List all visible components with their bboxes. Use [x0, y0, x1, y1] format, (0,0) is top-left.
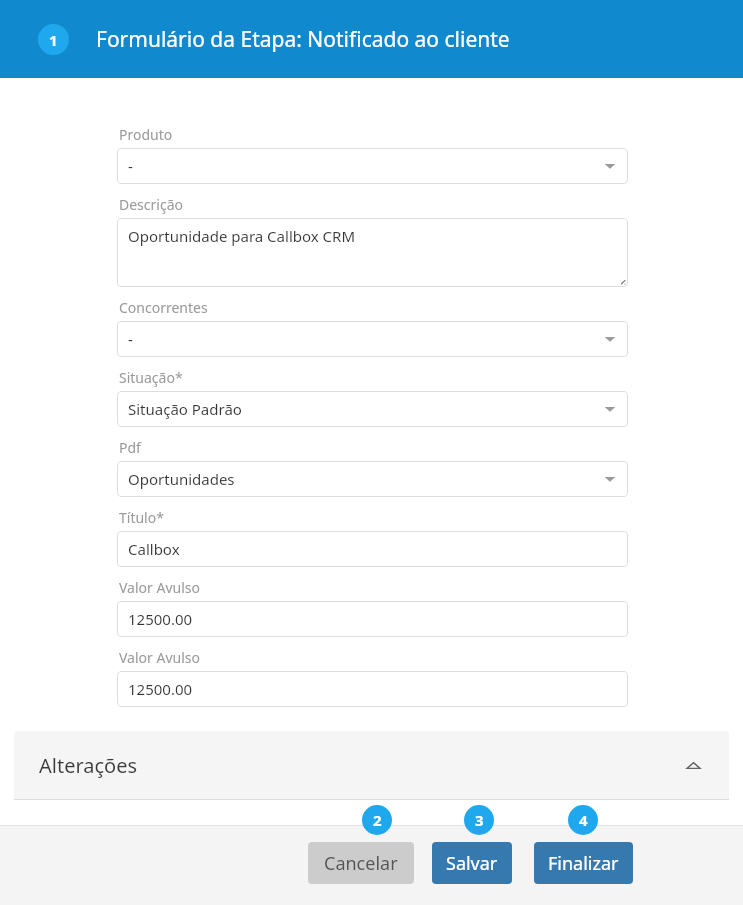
staticText: Valor Avulso	[119, 648, 200, 667]
staticText: Concorrentes	[119, 298, 208, 317]
staticText: Produto	[119, 125, 173, 144]
staticText: Oportunidade para Callbox CRM	[128, 226, 355, 246]
button[interactable]: Callbox	[117, 531, 628, 567]
staticText: Formulário da Etapa: Notificado ao clien…	[96, 25, 510, 54]
button[interactable]: -	[117, 148, 628, 184]
button[interactable]: 12500.00	[117, 671, 628, 707]
staticText: Valor Avulso	[119, 578, 200, 597]
staticText: Finalizar	[548, 851, 619, 876]
other: Collapse	[687, 759, 700, 772]
button[interactable]: Finalizar	[534, 842, 633, 884]
staticText: 2	[373, 810, 382, 830]
staticText: Oportunidades	[128, 469, 235, 489]
staticText: Alterações	[39, 752, 138, 779]
button[interactable]: Oportunidade para Callbox CRM	[117, 218, 628, 287]
button[interactable]: Oportunidades	[117, 461, 628, 497]
staticText: 12500.00	[128, 609, 193, 629]
staticText: -	[128, 156, 133, 176]
staticText: Situação Padrão	[128, 399, 242, 419]
staticText: Cancelar	[324, 851, 398, 876]
staticText: 3	[475, 810, 484, 830]
staticText: Salvar	[446, 851, 498, 876]
button[interactable]: Situação Padrão	[117, 391, 628, 427]
staticText: 4	[579, 810, 588, 830]
staticText: Situação*	[119, 368, 183, 387]
button[interactable]: Alterações	[14, 731, 729, 799]
staticText: Pdf	[119, 438, 141, 457]
button[interactable]: Cancelar	[308, 842, 414, 884]
staticText: Título*	[119, 508, 164, 527]
button[interactable]: Salvar	[432, 842, 512, 884]
staticText: 12500.00	[128, 679, 193, 699]
staticText: Callbox	[128, 539, 180, 559]
staticText: Descrição	[119, 195, 183, 214]
staticText: -	[128, 329, 133, 349]
button[interactable]: -	[117, 321, 628, 357]
button[interactable]: 12500.00	[117, 601, 628, 637]
staticText: 1	[49, 30, 58, 50]
